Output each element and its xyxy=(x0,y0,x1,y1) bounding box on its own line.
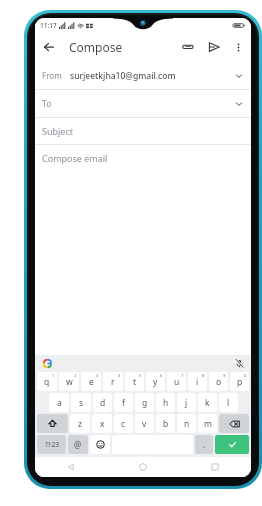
button[interactable]: Subject xyxy=(35,118,251,145)
staticText: p xyxy=(237,376,243,388)
staticText: 7 xyxy=(181,373,184,379)
staticText: m xyxy=(204,418,212,430)
staticText: j xyxy=(185,397,188,409)
staticText: i xyxy=(196,376,199,388)
staticText: w xyxy=(66,376,73,388)
staticText: 0 xyxy=(244,373,247,379)
staticText: . xyxy=(203,439,206,450)
staticText: 6 xyxy=(160,373,163,379)
staticText: a xyxy=(57,397,62,409)
button[interactable]: Backspace xyxy=(219,414,249,433)
button[interactable]: m xyxy=(198,414,217,433)
button[interactable]: k xyxy=(198,393,217,412)
staticText: From xyxy=(42,70,62,81)
button[interactable]: g xyxy=(135,393,154,412)
staticText: h xyxy=(163,397,169,409)
button[interactable]: . xyxy=(195,435,213,454)
staticText: n xyxy=(184,418,190,430)
staticText: 1 xyxy=(52,373,55,379)
staticText: t xyxy=(133,376,137,388)
staticText: v xyxy=(142,418,147,430)
button[interactable]: z xyxy=(70,414,90,433)
button[interactable]: i xyxy=(188,372,207,391)
button[interactable]: Google xyxy=(41,357,53,369)
button[interactable]: @ xyxy=(68,435,88,454)
staticText: Compose xyxy=(69,39,123,55)
staticText: Compose email xyxy=(42,152,108,164)
button[interactable]: o xyxy=(209,372,228,391)
staticText: u xyxy=(174,376,180,388)
staticText: 3 xyxy=(96,373,99,379)
staticText: c xyxy=(121,418,126,430)
button[interactable]: x xyxy=(92,414,112,433)
button[interactable]: c xyxy=(114,414,133,433)
staticText: ?123 xyxy=(45,440,59,449)
staticText: 11:17 xyxy=(40,21,57,30)
button[interactable]: Recent apps xyxy=(179,457,251,477)
button[interactable]: ?123 xyxy=(37,435,66,454)
staticText: @ xyxy=(74,439,82,450)
staticText: z xyxy=(78,418,82,430)
button[interactable]: w xyxy=(59,372,79,391)
staticText: surjeetkjha10@gmail.com xyxy=(70,70,176,82)
button[interactable]: More options xyxy=(227,36,249,58)
button[interactable]: Back xyxy=(35,33,63,61)
staticText: 2 xyxy=(74,373,77,379)
button[interactable]: Send xyxy=(201,34,227,60)
staticText: 8 xyxy=(202,373,205,379)
button[interactable]: f xyxy=(114,393,133,412)
staticText: l xyxy=(227,397,230,409)
button[interactable]: n xyxy=(177,414,196,433)
staticText: d xyxy=(100,397,106,409)
button[interactable]: l xyxy=(219,393,238,412)
staticText: s xyxy=(79,397,84,409)
button[interactable]: q xyxy=(37,372,57,391)
staticText: 4 xyxy=(118,373,121,379)
button[interactable]: Emoji xyxy=(90,435,110,454)
button[interactable]: s xyxy=(71,393,91,412)
staticText: 5 xyxy=(139,373,142,379)
button[interactable]: h xyxy=(156,393,175,412)
button[interactable]: Attach file xyxy=(175,34,201,60)
button[interactable]: Home xyxy=(107,457,179,477)
staticText: y xyxy=(153,376,158,388)
button[interactable]: e xyxy=(81,372,101,391)
staticText: f xyxy=(122,397,125,409)
button[interactable]: Shift xyxy=(37,414,68,433)
staticText: q xyxy=(44,376,50,388)
button[interactable]: y xyxy=(146,372,165,391)
button[interactable]: Back xyxy=(35,457,107,477)
staticText: o xyxy=(216,376,222,388)
button[interactable]: t xyxy=(125,372,144,391)
button[interactable]: To xyxy=(35,90,251,118)
button[interactable]: a xyxy=(49,393,69,412)
staticText: g xyxy=(142,397,148,409)
button[interactable]: Compose email xyxy=(35,145,251,171)
staticText: r xyxy=(111,376,115,388)
staticText: To xyxy=(42,98,52,110)
button[interactable]: d xyxy=(93,393,112,412)
staticText: e xyxy=(89,376,94,388)
button[interactable]: j xyxy=(177,393,196,412)
button[interactable]: b xyxy=(156,414,175,433)
button[interactable]: From xyxy=(35,62,251,90)
button[interactable]: u xyxy=(167,372,186,391)
button[interactable]: r xyxy=(103,372,123,391)
staticText: k xyxy=(205,397,210,409)
staticText: x xyxy=(100,418,105,430)
button[interactable]: p xyxy=(230,372,249,391)
staticText: 9 xyxy=(223,373,226,379)
button[interactable]: v xyxy=(135,414,154,433)
button[interactable]: Enter xyxy=(215,435,249,454)
staticText: Subject xyxy=(42,125,74,137)
button[interactable]: Voice input off xyxy=(233,357,245,369)
staticText: b xyxy=(163,418,169,430)
